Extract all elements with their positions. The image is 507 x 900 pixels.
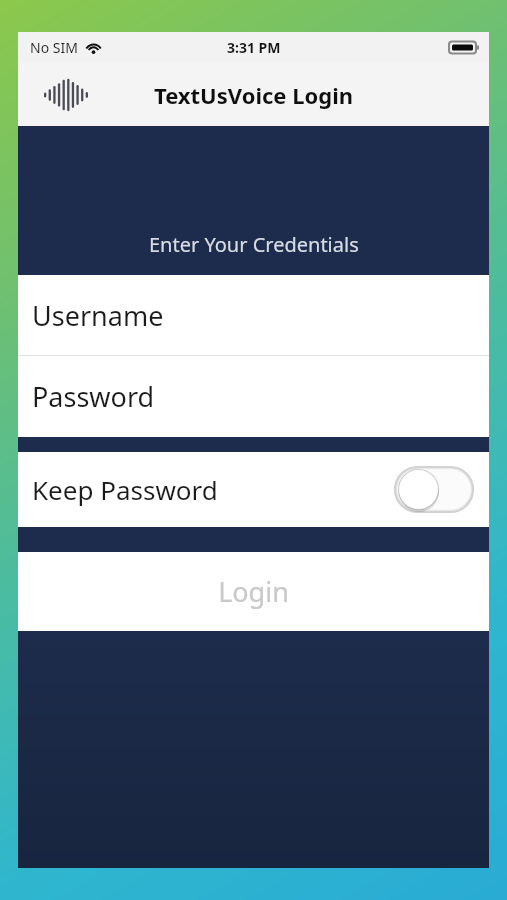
staticText: Login — [218, 573, 289, 610]
button[interactable]: Voice waveform — [42, 75, 90, 115]
staticText: TextUsVoice Login — [154, 80, 354, 110]
staticText: No SIM — [30, 38, 78, 57]
button[interactable]: Keep Password — [18, 452, 489, 527]
button[interactable]: Login — [18, 552, 489, 631]
staticText: Password — [32, 378, 155, 415]
button[interactable]: Username — [18, 275, 489, 355]
button[interactable]: Keep Password toggle — [395, 467, 473, 512]
staticText: Username — [32, 297, 164, 334]
staticText: Enter Your Credentials — [149, 231, 359, 258]
staticText: Keep Password — [32, 472, 218, 507]
button[interactable]: Password — [18, 356, 489, 437]
staticText: 3:31 PM — [227, 38, 281, 57]
